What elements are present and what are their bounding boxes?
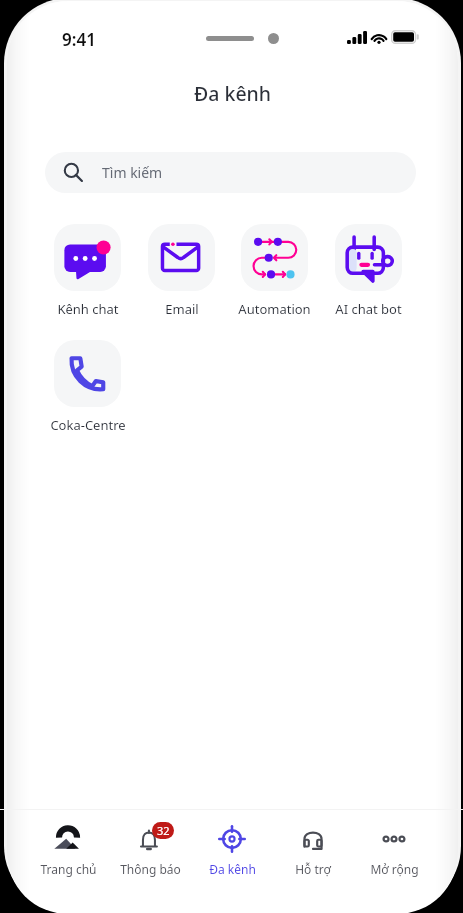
staticText: Thông báo bbox=[120, 861, 181, 877]
button[interactable]: Đa kênh bbox=[191, 824, 273, 877]
staticText: 32 bbox=[157, 823, 170, 838]
staticText: Email bbox=[165, 300, 199, 318]
staticText: Trang chủ bbox=[40, 861, 97, 877]
staticText: Đa kênh bbox=[194, 80, 272, 107]
staticText: Coka-Centre bbox=[50, 416, 126, 434]
button[interactable]: Email bbox=[135, 224, 228, 318]
staticText: Đa kênh bbox=[209, 861, 256, 877]
button[interactable]: Mở rộng bbox=[353, 824, 435, 877]
staticText: Hỗ trợ bbox=[295, 861, 331, 877]
button[interactable]: Trang chủ bbox=[27, 824, 109, 877]
button[interactable]: Automation bbox=[228, 224, 321, 318]
staticText: Kênh chat bbox=[57, 300, 119, 318]
button[interactable]: Coka-Centre bbox=[41, 340, 134, 434]
staticText: Tìm kiếm bbox=[102, 163, 163, 182]
button[interactable]: Hỗ trợ bbox=[272, 824, 354, 877]
staticText: Automation bbox=[238, 300, 311, 318]
button[interactable]: Thông báo bbox=[109, 824, 191, 877]
staticText: Mở rộng bbox=[370, 861, 419, 877]
button[interactable]: Tìm kiếm bbox=[45, 152, 416, 193]
button[interactable]: Kênh chat bbox=[41, 224, 134, 318]
staticText: AI chat bot bbox=[335, 300, 402, 318]
staticText: 9:41 bbox=[62, 28, 96, 51]
button[interactable]: AI chat bot bbox=[322, 224, 415, 318]
